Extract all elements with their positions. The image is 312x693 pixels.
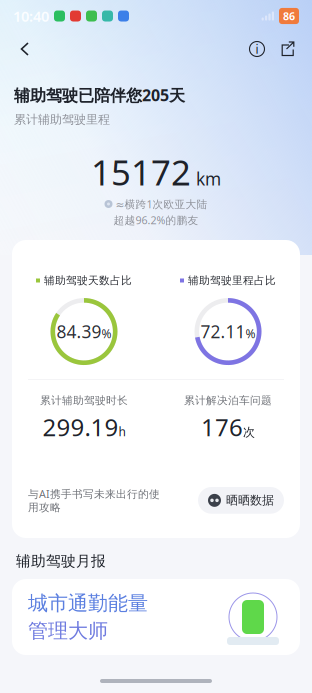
staticText: % <box>101 326 111 342</box>
staticText: 辅助驾驶月报 <box>16 552 106 570</box>
staticText: 299.19 <box>42 411 118 443</box>
staticText: 次 <box>243 425 255 440</box>
staticText: 城市通勤能量 <box>28 591 148 616</box>
button[interactable]: 晒晒数据 <box>198 487 284 514</box>
staticText: 晒晒数据 <box>226 493 274 508</box>
staticText: 累计辅助驾驶里程 <box>14 112 110 127</box>
staticText: 与AI携手书写未来出行的使用攻略 <box>28 487 160 514</box>
staticText: 辅助驾驶里程占比 <box>188 274 276 287</box>
staticText: 管理大师 <box>28 618 108 643</box>
button[interactable]: Info <box>242 32 272 66</box>
staticText: 15172 <box>91 149 191 195</box>
staticText: km <box>196 167 221 190</box>
staticText: h <box>118 424 125 440</box>
staticText: % <box>245 326 255 342</box>
staticText: 超越96.2%的鹏友 <box>113 213 198 227</box>
staticText: ≈横跨1次欧亚大陆 <box>115 197 207 211</box>
staticText: 86 <box>283 9 295 23</box>
staticText: i <box>255 41 258 57</box>
button[interactable]: Back <box>8 32 42 66</box>
staticText: 72.11 <box>200 320 245 343</box>
staticText: 累计辅助驾驶时长 <box>40 394 128 407</box>
staticText: 84.39 <box>56 320 101 343</box>
staticText: 176 <box>201 411 243 443</box>
staticText: 辅助驾驶已陪伴您205天 <box>14 84 185 106</box>
button[interactable]: 城市通勤能量 <box>12 579 300 655</box>
button[interactable]: Share <box>272 32 304 66</box>
staticText: 辅助驾驶天数占比 <box>44 274 132 287</box>
staticText: 累计解决泊车问题 <box>184 394 272 407</box>
staticText: 10:40 <box>13 6 49 26</box>
